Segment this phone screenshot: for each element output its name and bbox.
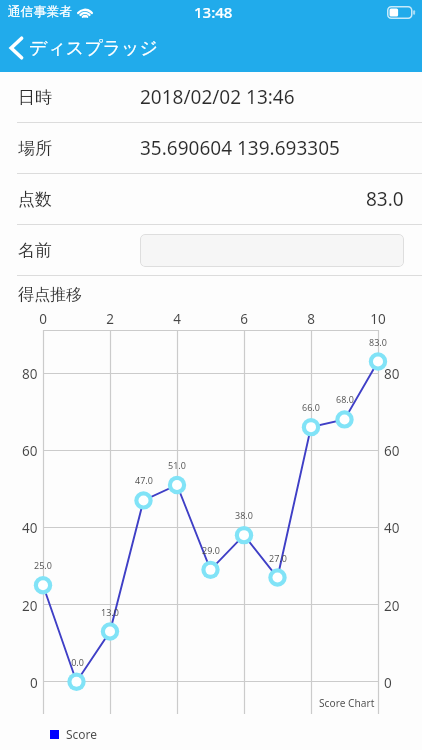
staticText: 80 (22, 365, 38, 383)
staticText: Score Chart (319, 696, 375, 710)
staticText: 80 (384, 365, 400, 383)
other: Back (6, 34, 26, 62)
staticText: 83.0 (366, 186, 404, 212)
staticText: Score (66, 726, 98, 742)
staticText: 8 (307, 310, 315, 328)
staticText: 27.0 (269, 552, 287, 564)
staticText: 13.0 (101, 606, 119, 618)
staticText: 0 (30, 674, 38, 692)
staticText: 13:48 (194, 2, 233, 22)
staticText: 日時 (18, 87, 52, 108)
staticText: 40 (22, 519, 38, 537)
staticText: 60 (384, 442, 400, 460)
staticText: 場所 (18, 138, 52, 159)
button[interactable]: 点数 (0, 174, 422, 224)
staticText: 51.0 (168, 459, 186, 471)
staticText: 20 (384, 597, 400, 615)
staticText: 通信事業者 (8, 4, 72, 20)
staticText: 25.0 (34, 559, 52, 571)
staticText: 6 (240, 310, 248, 328)
staticText: 29.0 (202, 544, 220, 556)
staticText: 68.0 (336, 393, 354, 405)
staticText: 10 (370, 310, 386, 328)
staticText: 40 (384, 519, 400, 537)
staticText: 得点推移 (18, 285, 82, 305)
staticText: 2018/02/02 13:46 (140, 84, 295, 110)
staticText: 83.0 (369, 336, 387, 348)
staticText: 35.690604 139.693305 (140, 135, 340, 161)
button[interactable]: 日時 (0, 72, 422, 122)
staticText: 38.0 (235, 509, 253, 521)
staticText: 60 (22, 442, 38, 460)
staticText: 0 (384, 674, 392, 692)
staticText: 2 (106, 310, 114, 328)
button[interactable]: Back (0, 24, 422, 72)
button[interactable] (140, 234, 404, 267)
staticText: ディスプラッジ (29, 37, 158, 60)
staticText: 点数 (18, 189, 52, 210)
staticText: 20 (22, 597, 38, 615)
staticText: 0.0 (71, 656, 84, 668)
staticText: 4 (173, 310, 181, 328)
staticText: 47.0 (135, 474, 153, 486)
staticText: 名前 (18, 240, 52, 261)
button[interactable]: 場所 (0, 123, 422, 173)
staticText: 0 (39, 310, 47, 328)
staticText: 66.0 (302, 401, 320, 413)
